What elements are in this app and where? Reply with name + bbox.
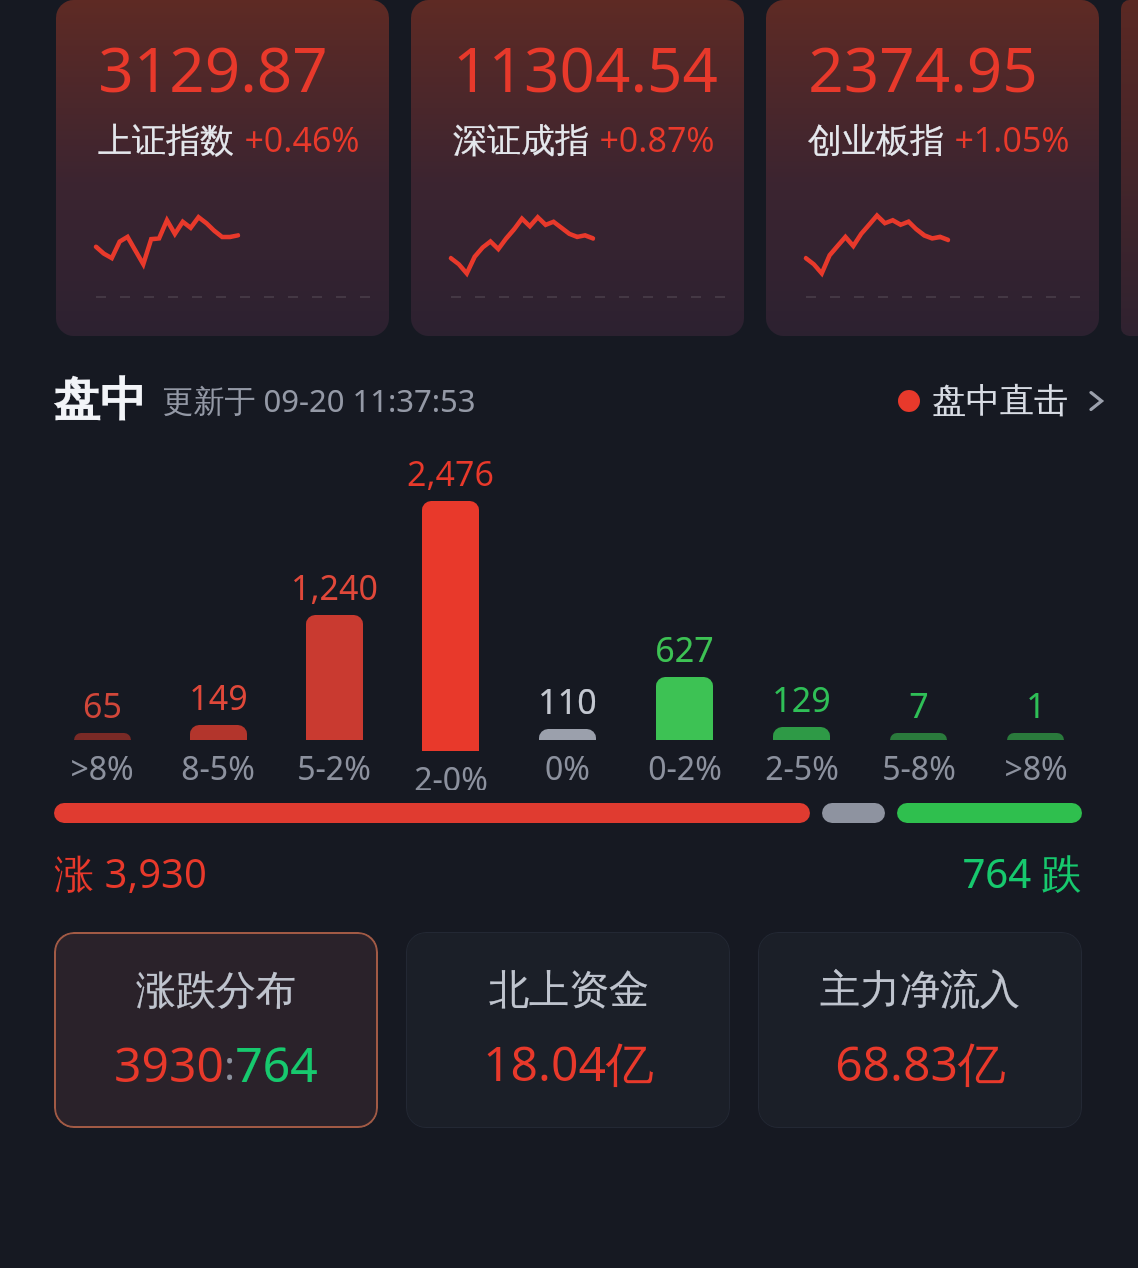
staticText: 3930 (114, 1031, 224, 1096)
button[interactable]: 盘中直击 (894, 379, 1114, 422)
staticText: 涨 3,930 (54, 845, 207, 900)
staticText: 149 (189, 674, 248, 720)
staticText: 5-2% (297, 746, 371, 790)
staticText: +1.05% (954, 116, 1070, 162)
staticText: 7 (909, 682, 929, 728)
staticText: 盘中直击 (932, 379, 1068, 422)
staticText: 2-5% (765, 746, 839, 790)
staticText: 11304.54 (453, 26, 718, 110)
staticText: 764 (235, 1031, 318, 1096)
staticText: 764 跌 (962, 845, 1082, 900)
staticText: 5-8% (882, 746, 956, 790)
staticText: 18.04亿 (483, 1030, 654, 1096)
staticText: 68.83亿 (835, 1030, 1006, 1096)
staticText: 3129.87 (98, 26, 328, 110)
staticText: 0-2% (648, 746, 722, 790)
staticText: 盘中 (54, 371, 146, 429)
staticText: +0.46% (244, 116, 360, 162)
staticText: +0.87% (599, 116, 715, 162)
staticText: 北上资金 (489, 964, 649, 1014)
staticText: 2-0% (414, 757, 488, 790)
staticText: >8% (1004, 746, 1068, 790)
button[interactable]: 2374.95 (766, 0, 1099, 336)
staticText: 627 (655, 626, 714, 672)
staticText: 更新于 09-20 11:37:53 (162, 379, 476, 421)
staticText: 2,476 (407, 450, 494, 496)
staticText: 创业板指 (808, 119, 944, 162)
staticText: 129 (772, 676, 831, 722)
staticText: 1,240 (291, 564, 378, 610)
staticText: 1 (1026, 682, 1046, 728)
button[interactable]: 3129.87 (56, 0, 389, 336)
staticText: 2374.95 (808, 26, 1038, 110)
staticText: 上证指数 (98, 119, 234, 162)
staticText: 110 (538, 678, 597, 724)
button[interactable] (1121, 0, 1138, 336)
staticText: : (224, 1037, 235, 1091)
button[interactable]: 涨跌分布 (54, 932, 378, 1128)
staticText: 8-5% (181, 746, 255, 790)
button[interactable]: 北上资金 (406, 932, 730, 1128)
staticText: 主力净流入 (820, 964, 1020, 1014)
button[interactable]: 主力净流入 (758, 932, 1082, 1128)
button[interactable]: 11304.54 (411, 0, 744, 336)
staticText: 涨跌分布 (136, 965, 296, 1015)
staticText: 65 (83, 682, 122, 728)
staticText: 0% (545, 746, 590, 790)
staticText: 深证成指 (453, 119, 589, 162)
staticText: >8% (70, 746, 134, 790)
